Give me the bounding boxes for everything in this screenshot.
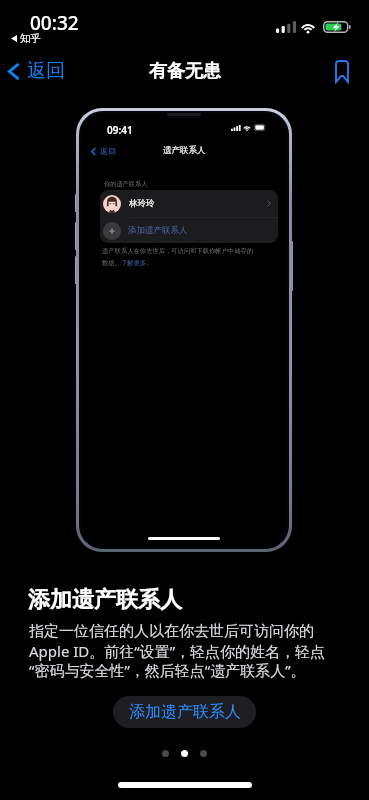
staticText: Apple ID。前往“设置”，轻点你的姓名，轻点 <box>29 641 326 661</box>
staticText: 了解更多。 <box>121 259 153 267</box>
staticText: 返回 <box>27 59 65 83</box>
staticText: 遗产联系人在你去世后，可访问和下载你帐户中储存的 <box>102 247 254 255</box>
staticText: 指定一位信任的人以在你去世后可访问你的 <box>29 622 314 641</box>
staticText: 添加遗产联系人 <box>128 225 188 236</box>
staticText: 遗产联系人 <box>163 145 206 156</box>
staticText: 添加遗产联系人 <box>129 702 241 722</box>
button[interactable]: 返回 <box>91 146 116 156</box>
staticText: 00:32 <box>30 10 79 36</box>
staticText: “密码与安全性”，然后轻点“遗产联系人”。 <box>29 660 306 680</box>
staticText: 你的遗产联系人 <box>104 180 148 188</box>
button[interactable]: 添加遗产联系人 <box>113 696 256 728</box>
button[interactable]: 添加遗产联系人 <box>100 218 278 243</box>
staticText: 返回 <box>100 146 116 156</box>
staticText: 09:41 <box>107 123 133 137</box>
staticText: 有备无患 <box>149 60 221 83</box>
button[interactable]: 返回 <box>0 53 75 89</box>
staticText: 数据。 <box>102 259 121 267</box>
button[interactable]: 林玲玲 <box>100 190 278 217</box>
button[interactable]: Bookmark <box>321 52 369 91</box>
staticText: 知乎 <box>20 32 41 45</box>
staticText: 林玲玲 <box>129 198 155 209</box>
staticText: 添加遗产联系人 <box>28 586 182 614</box>
